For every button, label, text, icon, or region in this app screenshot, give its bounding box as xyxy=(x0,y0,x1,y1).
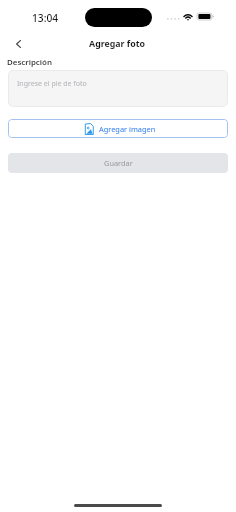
button[interactable]: Back xyxy=(12,38,24,50)
staticText: Agregar imagen xyxy=(99,124,156,134)
staticText: Guardar xyxy=(104,158,133,168)
button[interactable]: Ingrese el pie de foto xyxy=(8,70,228,107)
button[interactable]: Guardar xyxy=(8,153,228,173)
staticText: Agregar foto xyxy=(89,38,145,50)
staticText: Descripción xyxy=(7,57,52,68)
staticText: Ingrese el pie de foto xyxy=(17,79,87,89)
staticText: 13:04 xyxy=(32,11,59,25)
button[interactable]: Agregar imagen xyxy=(8,119,228,138)
other: Battery xyxy=(197,13,214,20)
other: Wi-Fi xyxy=(184,9,192,17)
